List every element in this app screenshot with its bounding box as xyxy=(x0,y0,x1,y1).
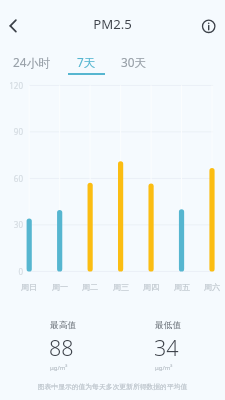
staticText: 90 xyxy=(0,126,23,137)
staticText: 最高值 xyxy=(50,320,77,331)
staticText: 60 xyxy=(0,173,23,184)
staticText: μg/m³ xyxy=(155,364,173,372)
staticText: PM2.5 xyxy=(0,15,225,33)
staticText: 24小时 xyxy=(13,54,51,70)
staticText: 周四 xyxy=(136,282,166,292)
staticText: 周五 xyxy=(167,282,197,292)
staticText: 0 xyxy=(0,266,23,277)
staticText: 7天 xyxy=(77,54,96,70)
staticText: 周六 xyxy=(197,282,225,292)
staticText: 34 xyxy=(154,333,179,362)
staticText: 最低值 xyxy=(155,320,182,331)
button[interactable]: 24小时 xyxy=(8,54,56,75)
button[interactable]: 最低值 xyxy=(155,312,195,378)
staticText: 30天 xyxy=(121,54,147,70)
staticText: 周二 xyxy=(75,282,105,292)
button[interactable]: Info xyxy=(193,10,225,42)
staticText: 图表中显示的值为每天多次更新所得数据的平均值 xyxy=(0,382,225,391)
staticText: 88 xyxy=(49,333,74,362)
staticText: 周三 xyxy=(106,282,136,292)
staticText: 30 xyxy=(0,219,23,230)
staticText: 120 xyxy=(0,80,23,91)
staticText: 周日 xyxy=(14,282,44,292)
staticText: μg/m³ xyxy=(50,364,68,372)
staticText: 周一 xyxy=(45,282,75,292)
button[interactable]: 30天 xyxy=(110,54,158,75)
button[interactable]: 7天 xyxy=(62,54,110,75)
button[interactable]: 最高值 xyxy=(50,312,90,378)
button[interactable]: Back xyxy=(0,10,32,42)
